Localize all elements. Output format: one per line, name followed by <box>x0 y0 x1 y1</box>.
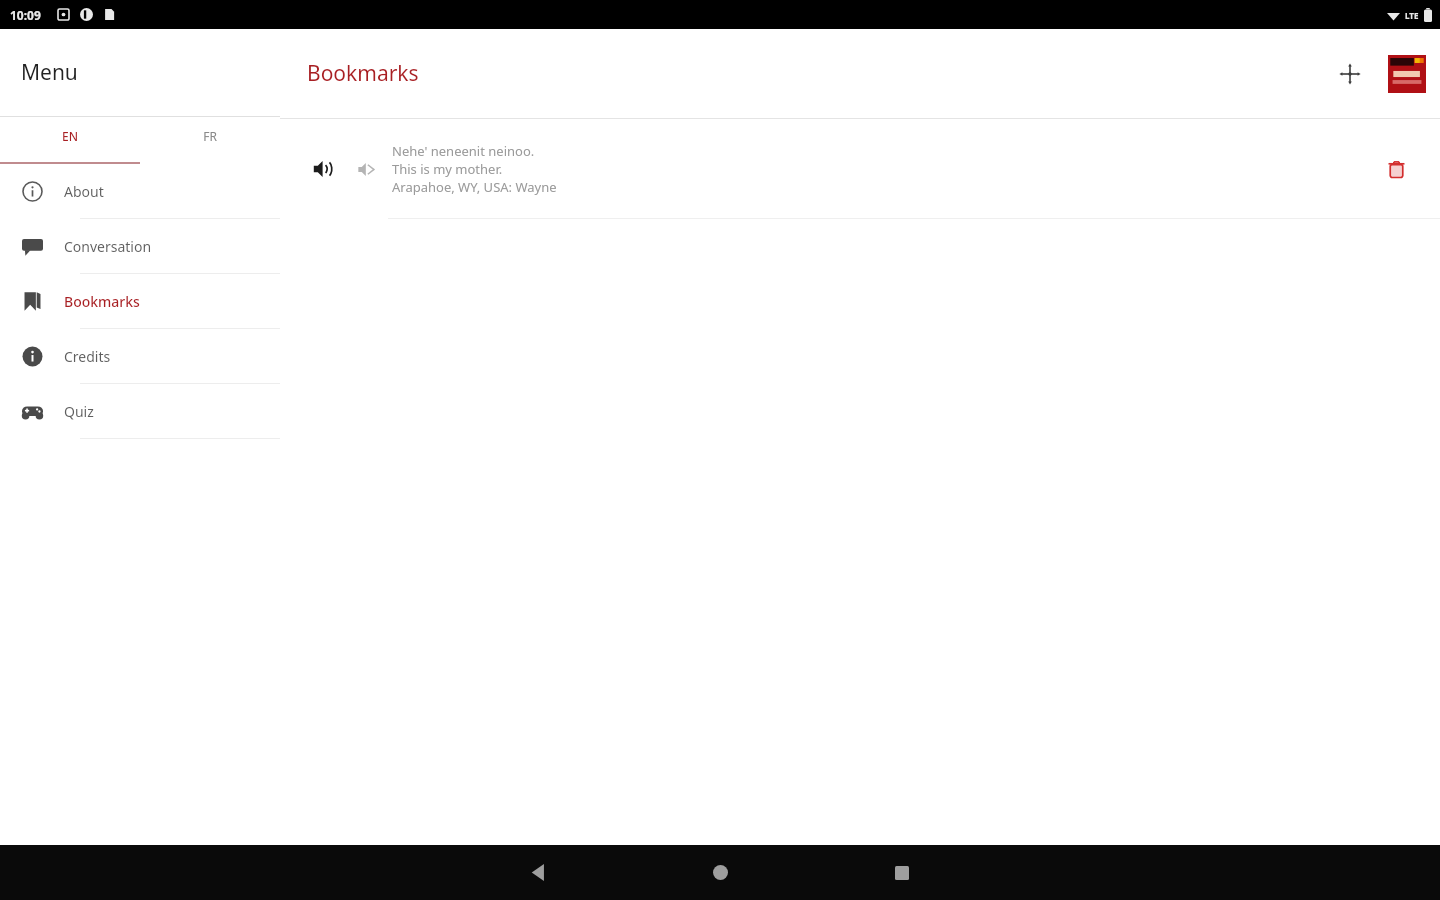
button[interactable]: Play slow audio <box>349 152 383 186</box>
button[interactable]: Bookmarks <box>0 274 280 328</box>
button[interactable]: EN <box>0 117 140 164</box>
button[interactable]: About <box>0 164 280 218</box>
button[interactable]: Home <box>690 845 750 900</box>
button[interactable]: Conversation <box>0 219 280 273</box>
button[interactable]: FR <box>140 117 280 164</box>
staticText: Bookmarks <box>307 59 419 88</box>
staticText: Menu <box>21 58 78 87</box>
staticText: FR <box>203 128 217 144</box>
button[interactable]: Move <box>1333 57 1367 91</box>
button[interactable]: Delete bookmark <box>1377 150 1415 188</box>
staticText: EN <box>62 128 78 144</box>
button[interactable]: Play audio <box>304 150 342 188</box>
button[interactable]: Back <box>508 845 568 900</box>
button[interactable]: Quiz <box>0 384 280 438</box>
staticText: Conversation <box>64 237 152 256</box>
button[interactable]: Credits <box>0 329 280 383</box>
staticText: Credits <box>64 347 111 366</box>
staticText: Nehe' neneenit neinoo. <box>392 142 535 160</box>
staticText: LTE <box>1405 10 1419 21</box>
staticText: Bookmarks <box>64 292 140 311</box>
staticText: 10:09 <box>10 7 41 23</box>
button[interactable]: Play audio <box>280 119 1440 219</box>
staticText: This is my mother. <box>392 160 503 178</box>
button[interactable]: App logo <box>1387 54 1426 93</box>
staticText: About <box>64 182 104 201</box>
staticText: Quiz <box>64 402 94 421</box>
button[interactable]: Recent apps <box>872 845 932 900</box>
staticText: Arapahoe, WY, USA: Wayne <box>392 178 557 196</box>
